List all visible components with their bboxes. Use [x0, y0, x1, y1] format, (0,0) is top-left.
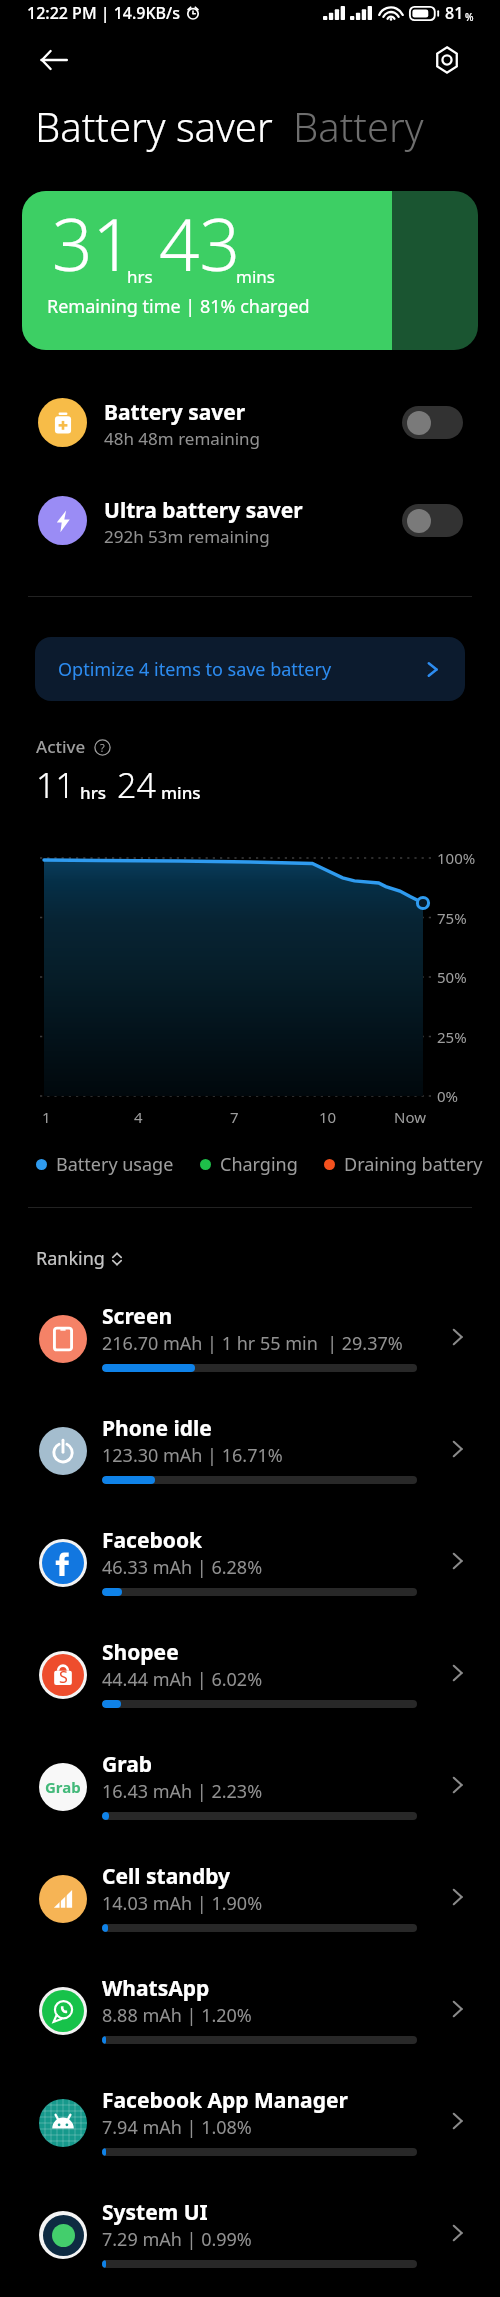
staticText: Ultra battery saver: [104, 496, 303, 525]
staticText: 11: [36, 762, 75, 808]
staticText: Remaining time | 81% charged: [47, 294, 310, 319]
button[interactable]: Optimize 4 items to save battery: [35, 637, 465, 701]
staticText: Battery saver: [35, 99, 273, 153]
staticText: 31: [52, 195, 134, 292]
staticText: 4: [134, 1107, 143, 1127]
staticText: 16.43 mAh | 2.23%: [102, 1779, 263, 1804]
staticText: Optimize 4 items to save battery: [58, 657, 332, 682]
button[interactable]: System UI: [0, 2186, 500, 2297]
button[interactable]: Ranking: [36, 1246, 124, 1271]
button[interactable]: S: [0, 1626, 500, 1738]
staticText: 8.88 mAh | 1.20%: [102, 2003, 252, 2028]
button[interactable]: Battery: [293, 99, 424, 153]
staticText: 100%: [437, 848, 476, 868]
staticText: %: [465, 10, 474, 24]
staticText: Facebook: [102, 1526, 203, 1555]
staticText: 44.44 mAh | 6.02%: [102, 1667, 263, 1692]
staticText: Ranking: [36, 1246, 105, 1271]
button[interactable]: Help: [92, 737, 112, 757]
staticText: 25%: [437, 1027, 467, 1047]
staticText: S: [59, 1666, 68, 1688]
staticText: 43: [159, 195, 241, 292]
staticText: 292h 53m remaining: [104, 525, 270, 548]
staticText: 50%: [437, 967, 467, 987]
staticText: 7.94 mAh | 1.08%: [102, 2115, 252, 2140]
staticText: 123.30 mAh | 16.71%: [102, 1443, 283, 1468]
staticText: 75%: [437, 908, 467, 928]
staticText: Active: [36, 735, 86, 758]
staticText: 46.33 mAh | 6.28%: [102, 1555, 263, 1580]
button[interactable]: Cell standby: [0, 1850, 500, 1962]
staticText: hrs: [80, 781, 107, 804]
staticText: Cell standby: [102, 1862, 230, 1891]
staticText: System UI: [102, 2198, 208, 2227]
staticText: WhatsApp: [102, 1974, 210, 2003]
staticText: Screen: [102, 1302, 173, 1331]
button[interactable]: Facebook: [0, 1514, 500, 1626]
staticText: Charging: [220, 1152, 298, 1177]
staticText: 0%: [437, 1086, 459, 1106]
button[interactable]: Toggle: [402, 406, 463, 439]
button[interactable]: Ultra battery saver: [0, 488, 500, 552]
button[interactable]: Toggle: [402, 504, 463, 537]
button[interactable]: 31: [22, 191, 478, 350]
staticText: 12:22 PM | 14.9KB/s: [27, 2, 181, 24]
staticText: Now: [394, 1107, 426, 1127]
staticText: Shopee: [102, 1638, 179, 1667]
staticText: 81: [445, 2, 464, 24]
staticText: 1: [42, 1107, 51, 1127]
staticText: ?: [100, 740, 105, 755]
button[interactable]: Phone idle: [0, 1402, 500, 1514]
staticText: Battery saver: [104, 398, 246, 427]
staticText: Battery: [293, 99, 424, 153]
staticText: 14.03 mAh | 1.90%: [102, 1891, 263, 1916]
staticText: Facebook App Manager: [102, 2086, 348, 2115]
staticText: Draining battery: [344, 1152, 483, 1177]
staticText: 48h 48m remaining: [104, 427, 261, 450]
button[interactable]: Back: [32, 38, 76, 82]
staticText: 10: [319, 1107, 337, 1127]
staticText: Phone idle: [102, 1414, 212, 1443]
staticText: Grab: [102, 1750, 153, 1779]
staticText: mins: [236, 265, 275, 288]
staticText: 7.29 mAh | 0.99%: [102, 2227, 252, 2252]
staticText: 7: [230, 1107, 239, 1127]
button[interactable]: Facebook App Manager: [0, 2074, 500, 2186]
button[interactable]: WhatsApp: [0, 1962, 500, 2074]
staticText: 216.70 mAh | 1 hr 55 min | 29.37%: [102, 1331, 403, 1356]
staticText: mins: [161, 781, 201, 804]
staticText: Grab: [45, 1777, 81, 1797]
staticText: Battery usage: [56, 1152, 174, 1177]
button[interactable]: Screen: [0, 1290, 500, 1402]
button[interactable]: Battery saver: [0, 390, 500, 454]
button[interactable]: Grab: [0, 1738, 500, 1850]
staticText: 24: [117, 762, 156, 808]
staticText: hrs: [127, 265, 153, 288]
button[interactable]: Settings: [425, 38, 469, 82]
